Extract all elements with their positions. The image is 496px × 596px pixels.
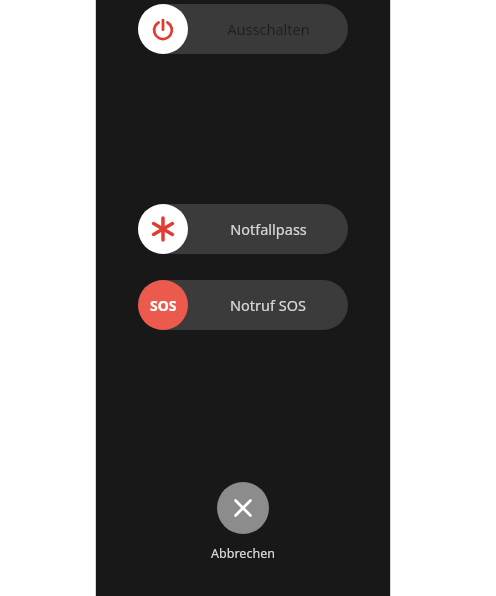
button[interactable]: Notruf SOS: [138, 280, 348, 330]
staticText: Abbrechen: [205, 545, 281, 562]
other: Abbrechen: [217, 482, 269, 534]
staticText: Notruf SOS: [230, 295, 306, 315]
staticText: Ausschalten: [227, 19, 310, 39]
button[interactable]: Notfallpass: [138, 204, 348, 254]
button[interactable]: Ausschalten: [138, 4, 348, 54]
staticText: SOS: [150, 296, 177, 315]
staticText: Notfallpass: [230, 219, 307, 239]
button[interactable]: Abbrechen: [205, 482, 281, 562]
